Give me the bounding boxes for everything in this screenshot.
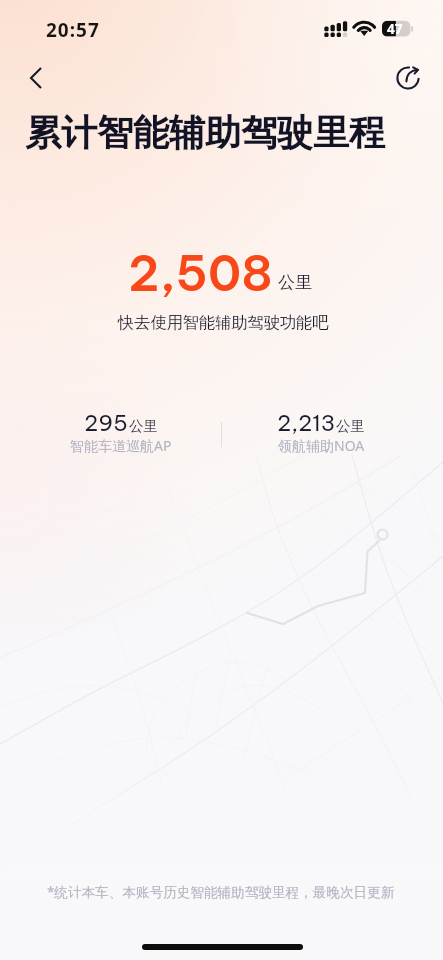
staticText: 47 — [387, 20, 403, 38]
button[interactable]: 2,213 — [232, 406, 414, 458]
staticText: 快去使用智能辅助驾驶功能吧 — [118, 312, 329, 332]
staticText: 公里 — [278, 272, 312, 293]
button[interactable]: Share — [386, 56, 430, 100]
staticText: 20:57 — [46, 17, 100, 43]
staticText: 累计智能辅助驾驶里程 — [25, 110, 385, 155]
staticText: 公里 — [129, 417, 158, 435]
staticText: 2,508 — [128, 243, 273, 304]
staticText: 公里 — [336, 417, 365, 435]
button[interactable]: Back — [14, 56, 58, 100]
staticText: 2,213 — [277, 409, 336, 437]
staticText: 领航辅助NOA — [278, 436, 365, 455]
staticText: 295 — [84, 409, 128, 437]
staticText: *统计本车、本账号历史智能辅助驾驶里程，最晚次日更新 — [47, 882, 395, 901]
staticText: 智能车道巡航AP — [70, 436, 172, 455]
button[interactable]: 295 — [30, 406, 212, 458]
